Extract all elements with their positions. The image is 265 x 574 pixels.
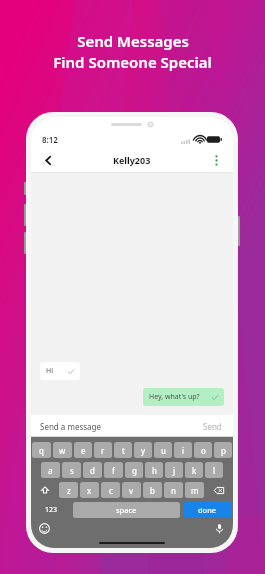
staticText: i: [182, 445, 185, 456]
button[interactable]: h: [145, 462, 163, 478]
staticText: 8:12: [42, 134, 58, 145]
staticText: g: [132, 465, 137, 476]
staticText: Hi: [46, 366, 53, 376]
button[interactable]: Voice input: [213, 522, 226, 535]
button[interactable]: k: [185, 462, 203, 478]
button[interactable]: p: [214, 442, 232, 458]
button[interactable]: x: [80, 482, 99, 498]
button[interactable]: t: [114, 442, 132, 458]
staticText: p: [221, 445, 226, 456]
button[interactable]: c: [101, 482, 120, 498]
staticText: f: [112, 465, 115, 476]
staticText: q: [39, 445, 44, 456]
button[interactable]: Shift: [32, 482, 57, 498]
button[interactable]: Backspace: [206, 482, 232, 498]
button[interactable]: Hey, what's up?: [143, 388, 224, 406]
staticText: w: [59, 445, 66, 456]
staticText: x: [87, 485, 92, 496]
staticText: d: [90, 465, 95, 476]
button[interactable]: z: [59, 482, 78, 498]
staticText: b: [150, 485, 155, 496]
button[interactable]: 123: [32, 502, 70, 518]
button[interactable]: l: [205, 462, 223, 478]
staticText: r: [101, 445, 105, 456]
button[interactable]: b: [143, 482, 162, 498]
button[interactable]: v: [122, 482, 141, 498]
staticText: Kelly203: [113, 154, 151, 166]
staticText: c: [109, 485, 113, 496]
staticText: e: [81, 445, 86, 456]
button[interactable]: q: [32, 442, 51, 458]
button[interactable]: j: [165, 462, 183, 478]
button[interactable]: f: [104, 462, 123, 478]
button[interactable]: g: [125, 462, 143, 478]
button[interactable]: Hi: [40, 362, 80, 380]
button[interactable]: y: [134, 442, 152, 458]
staticText: s: [70, 465, 74, 476]
button[interactable]: o: [194, 442, 212, 458]
staticText: y: [141, 445, 146, 456]
staticText: done: [198, 505, 217, 515]
button[interactable]: m: [185, 482, 204, 498]
staticText: m: [191, 485, 199, 496]
button[interactable]: u: [154, 442, 172, 458]
button[interactable]: done: [183, 502, 232, 518]
staticText: 123: [45, 505, 58, 515]
button[interactable]: i: [174, 442, 192, 458]
staticText: h: [152, 465, 157, 476]
staticText: Send a message: [40, 421, 101, 432]
button[interactable]: Back: [39, 151, 57, 169]
button[interactable]: s: [62, 462, 81, 478]
staticText: l: [213, 465, 216, 476]
button[interactable]: r: [94, 442, 112, 458]
staticText: v: [129, 485, 134, 496]
staticText: o: [201, 445, 206, 456]
staticText: space: [116, 505, 137, 515]
staticText: n: [171, 485, 176, 496]
staticText: j: [173, 465, 176, 476]
button[interactable]: w: [53, 442, 72, 458]
staticText: Send Messages: [77, 31, 189, 51]
button[interactable]: space: [73, 502, 180, 518]
staticText: Hey, what's up?: [149, 392, 200, 402]
button[interactable]: Emoji: [38, 522, 51, 535]
button[interactable]: More options: [207, 151, 225, 169]
button[interactable]: e: [74, 442, 92, 458]
button[interactable]: Send: [201, 419, 224, 434]
staticText: k: [192, 465, 197, 476]
staticText: Find Someone Special: [53, 52, 212, 72]
staticText: t: [122, 445, 125, 456]
button[interactable]: n: [164, 482, 183, 498]
staticText: a: [48, 465, 53, 476]
staticText: z: [67, 485, 71, 496]
button[interactable]: d: [83, 462, 102, 478]
staticText: u: [161, 445, 166, 456]
button[interactable]: a: [41, 462, 60, 478]
staticText: Send: [203, 421, 222, 432]
